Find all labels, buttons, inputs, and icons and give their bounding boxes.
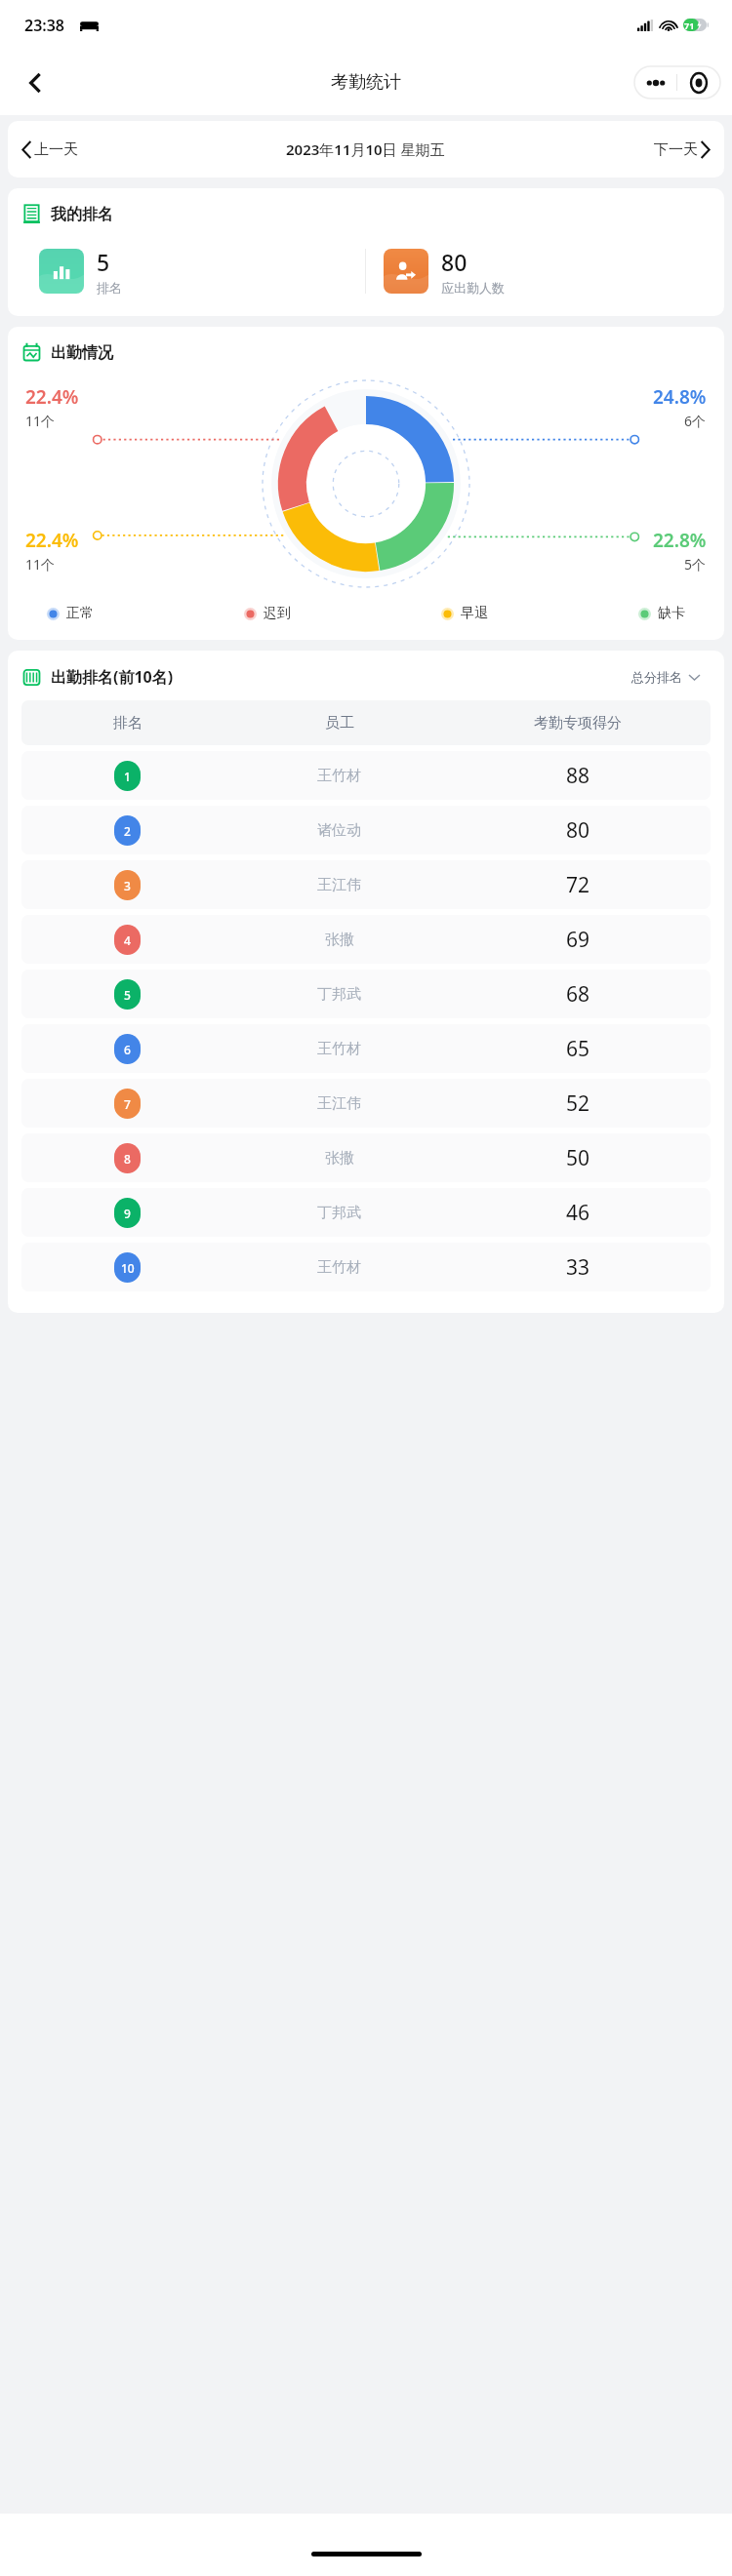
staticText: 应出勤人数: [441, 280, 505, 296]
staticText: 68: [566, 980, 590, 1009]
staticText: 8: [124, 1151, 131, 1167]
button[interactable]: Back: [14, 61, 57, 104]
staticText: 5: [124, 987, 131, 1003]
staticText: 王竹材: [317, 1258, 361, 1277]
staticText: 22.4%: [25, 528, 79, 553]
staticText: 丁邦武: [317, 1204, 361, 1222]
button[interactable]: 早退: [441, 605, 488, 622]
staticText: 3: [124, 878, 131, 893]
staticText: 王竹材: [317, 1040, 361, 1058]
staticText: 22.4%: [25, 384, 79, 410]
staticText: 72: [566, 871, 590, 899]
button[interactable]: 8: [21, 1133, 711, 1182]
button[interactable]: 4: [21, 915, 711, 964]
staticText: 出勤排名(前10名): [51, 666, 174, 688]
staticText: 1: [124, 769, 131, 784]
staticText: 11个: [25, 412, 56, 430]
button[interactable]: 上一天: [21, 140, 78, 159]
staticText: 总分排名: [631, 669, 682, 685]
staticText: 排名: [113, 714, 142, 733]
staticText: 6个: [684, 412, 707, 430]
staticText: 下一天: [654, 140, 698, 159]
staticText: 上一天: [34, 140, 78, 159]
staticText: 80: [441, 247, 468, 277]
button[interactable]: 1: [21, 751, 711, 800]
staticText: 88: [566, 762, 590, 790]
staticText: 出勤情况: [51, 343, 113, 363]
staticText: 5个: [684, 555, 707, 574]
staticText: 4: [124, 932, 131, 948]
staticText: 46: [566, 1199, 590, 1227]
staticText: 员工: [325, 714, 354, 733]
staticText: 早退: [461, 605, 488, 622]
button[interactable]: 3: [21, 860, 711, 909]
staticText: 50: [566, 1144, 590, 1172]
button[interactable]: 6: [21, 1024, 711, 1073]
staticText: 65: [566, 1035, 590, 1063]
staticText: 排名: [97, 280, 122, 296]
staticText: 王江伟: [317, 1094, 361, 1113]
staticText: 5: [97, 247, 110, 277]
staticText: 2: [124, 823, 131, 839]
button[interactable]: 总分排名: [621, 664, 711, 690]
button[interactable]: 10: [21, 1243, 711, 1291]
staticText: 缺卡: [658, 605, 685, 622]
staticText: 33: [566, 1253, 590, 1282]
staticText: 诸位动: [317, 821, 361, 840]
button[interactable]: Close: [677, 66, 720, 99]
button[interactable]: 下一天: [654, 140, 711, 159]
button[interactable]: 5: [21, 970, 711, 1018]
staticText: 6: [124, 1042, 131, 1057]
staticText: 正常: [66, 605, 94, 622]
staticText: 24.8%: [653, 384, 707, 410]
staticText: 王江伟: [317, 876, 361, 894]
staticText: 2023年11月10日 星期五: [286, 139, 445, 159]
staticText: 张撒: [325, 1149, 354, 1168]
button[interactable]: 7: [21, 1079, 711, 1128]
staticText: 王竹材: [317, 767, 361, 785]
staticText: 71: [684, 20, 695, 31]
staticText: 22.8%: [653, 528, 707, 553]
staticText: 张撒: [325, 931, 354, 949]
button[interactable]: More: [634, 66, 676, 99]
staticText: 考勤专项得分: [534, 714, 622, 733]
staticText: 52: [566, 1090, 590, 1118]
staticText: 10: [121, 1260, 135, 1276]
staticText: 迟到: [264, 605, 291, 622]
staticText: 9: [124, 1206, 131, 1221]
button[interactable]: 5: [21, 244, 365, 298]
staticText: 23:38: [24, 15, 65, 36]
staticText: 我的排名: [51, 205, 113, 224]
staticText: 11个: [25, 555, 56, 574]
button[interactable]: 迟到: [244, 605, 291, 622]
button[interactable]: 正常: [47, 605, 94, 622]
staticText: 80: [566, 816, 590, 845]
button[interactable]: 80: [366, 244, 711, 298]
staticText: 7: [124, 1096, 131, 1112]
button[interactable]: 缺卡: [638, 605, 685, 622]
button[interactable]: 9: [21, 1188, 711, 1237]
button[interactable]: 2: [21, 806, 711, 854]
staticText: 考勤统计: [331, 71, 401, 94]
staticText: 69: [566, 926, 590, 954]
staticText: 丁邦武: [317, 985, 361, 1004]
